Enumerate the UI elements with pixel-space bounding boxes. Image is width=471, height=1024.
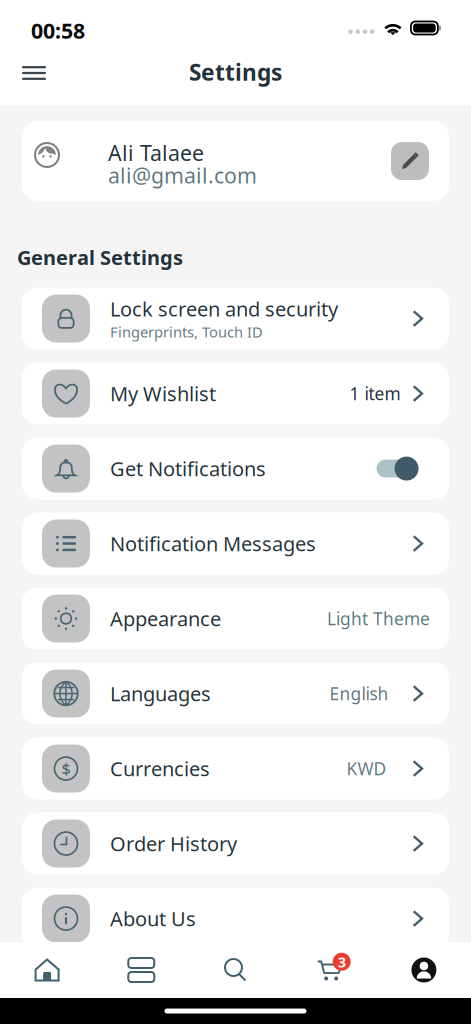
staticText: General Settings [17,244,183,271]
button[interactable]: Appearance [22,588,449,650]
staticText: Light Theme [327,607,430,630]
button[interactable]: Cart [283,958,377,982]
staticText: 1 item [349,382,400,405]
staticText: Languages [110,680,211,707]
staticText: ali@gmail.com [108,161,257,189]
staticText: Order History [110,830,237,857]
button[interactable]: Get Notifications [22,438,449,500]
staticText: Lock screen and security [110,295,338,322]
button[interactable]: Order History [22,813,449,875]
staticText: KWD [346,757,386,780]
button[interactable]: Home [0,958,94,982]
staticText: 00:58 [31,16,85,45]
button[interactable]: Menu [14,61,54,101]
button[interactable]: About Us [22,888,449,950]
button[interactable]: Languages [22,663,449,725]
staticText: English [329,682,388,705]
staticText: Ali Talaee [108,139,204,167]
button[interactable]: Categories [94,958,188,982]
staticText: My Wishlist [110,380,216,407]
staticText: Currencies [110,755,210,782]
staticText: Privacy Policy [110,980,235,1007]
staticText: 3 [338,952,346,971]
button[interactable]: Search [188,958,283,982]
button[interactable]: Profile [377,957,471,982]
staticText: Get Notifications [110,455,266,482]
button[interactable]: Notification Messages [22,513,449,575]
staticText: Notification Messages [110,530,316,557]
staticText: Settings [189,57,282,87]
staticText: Fingerprints, Touch ID [110,322,263,342]
button[interactable]: $ [22,738,449,800]
staticText: Appearance [110,605,221,632]
button[interactable]: Lock screen and security [22,288,449,350]
button[interactable]: My Wishlist [22,363,449,425]
button[interactable]: Privacy Policy [22,963,449,1024]
button[interactable]: Ali Talaee [0,121,471,201]
staticText: About Us [110,905,196,932]
staticText: $ [61,758,70,779]
